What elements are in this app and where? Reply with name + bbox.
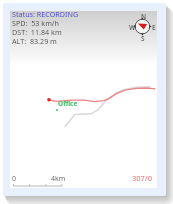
staticText: 4km [51,174,66,184]
staticText: ALT: 83.29 m [12,36,57,45]
staticText: SPD: 53 km/h [12,18,59,27]
staticText: Status: RECORDING [12,9,79,18]
staticText: 307/0 [132,173,152,183]
staticText: Office [58,99,78,108]
staticText: S [141,34,145,43]
staticText: 0 [12,174,17,184]
button[interactable]: Status: RECORDING [10,11,157,188]
staticText: DST: 11.84 km [12,27,62,36]
staticText: N [141,12,147,21]
staticText: E [152,23,156,32]
staticText: W [129,23,136,32]
